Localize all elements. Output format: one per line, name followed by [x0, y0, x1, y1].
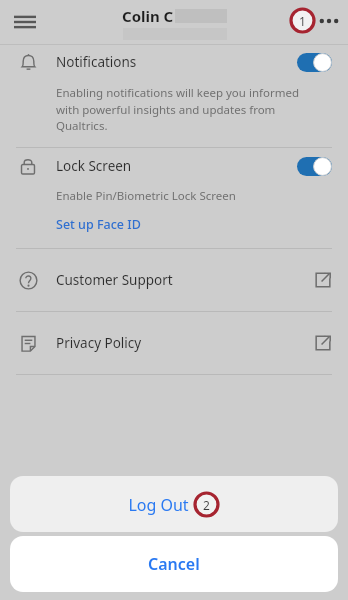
- button[interactable]: Lock Screen: [16, 148, 332, 184]
- button[interactable]: More options: [316, 8, 342, 34]
- button[interactable]: Cancel: [10, 536, 338, 592]
- button[interactable]: Log Out: [10, 476, 338, 532]
- staticText: Set up Face ID: [56, 216, 141, 233]
- staticText: Enabling notifications will keep you inf…: [56, 85, 318, 133]
- button[interactable]: Customer Support: [0, 249, 348, 311]
- button[interactable]: Toggle: [297, 157, 332, 176]
- staticText: Notifications: [56, 53, 137, 71]
- staticText: Log Out: [128, 494, 189, 516]
- button[interactable]: Notifications: [0, 45, 348, 147]
- button[interactable]: Toggle: [297, 53, 332, 72]
- staticText: Enable Pin/Biometric Lock Screen: [56, 188, 236, 204]
- staticText: 1: [299, 13, 306, 29]
- button[interactable]: Menu: [8, 5, 42, 39]
- staticText: Privacy Policy: [56, 334, 142, 352]
- staticText: Lock Screen: [56, 157, 132, 175]
- staticText: Cancel: [148, 553, 200, 575]
- staticText: 2: [203, 497, 210, 513]
- button[interactable]: Privacy Policy: [0, 312, 348, 374]
- staticText: Colin C: [122, 6, 174, 26]
- staticText: Customer Support: [56, 271, 173, 289]
- button[interactable]: Set up Face ID: [56, 216, 141, 233]
